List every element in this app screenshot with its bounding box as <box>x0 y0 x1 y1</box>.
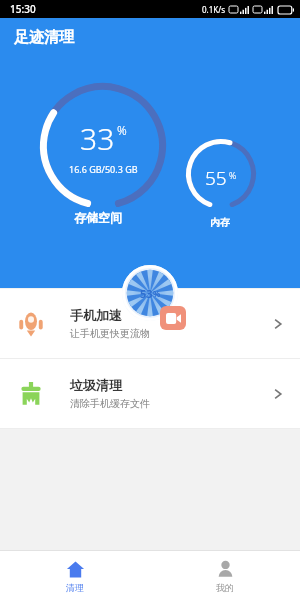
staticText: % <box>153 288 161 299</box>
staticText: 53 <box>140 286 153 301</box>
staticText: % <box>117 122 127 138</box>
button[interactable]: 我的 <box>150 551 300 600</box>
button[interactable]: 垃圾清理 <box>0 359 300 428</box>
staticText: 足迹清理 <box>14 28 74 47</box>
staticText: 清除手机缓存文件 <box>70 397 150 410</box>
staticText: 垃圾清理 <box>70 377 122 393</box>
button[interactable]: 手机加速 <box>0 289 300 358</box>
button[interactable]: 清理 <box>0 551 150 600</box>
staticText: 我的 <box>216 582 234 593</box>
staticText: 33 <box>80 118 115 159</box>
button[interactable]: Video ad <box>160 306 186 330</box>
staticText: 55 <box>205 165 227 191</box>
staticText: 手机加速 <box>70 307 122 323</box>
staticText: 清理 <box>66 582 84 593</box>
staticText: 存储空间 <box>74 210 122 225</box>
button[interactable]: Boost progress 53 percent <box>122 265 178 321</box>
staticText: 15:30 <box>10 2 36 16</box>
staticText: % <box>229 169 237 181</box>
staticText: 0.1K/s <box>202 4 226 15</box>
staticText: 16.6 GB/50.3 GB <box>69 163 138 175</box>
staticText: 让手机更快更流物 <box>70 327 150 340</box>
staticText: 内存 <box>210 216 230 229</box>
